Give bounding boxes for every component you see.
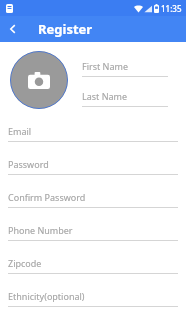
staticText: Zipcode <box>8 257 42 269</box>
staticText: Register <box>38 20 93 38</box>
button[interactable]: Phone Number <box>0 208 186 241</box>
button[interactable]: Confirm Password <box>0 175 186 208</box>
staticText: Last Name <box>82 90 128 102</box>
button[interactable]: Ethnicity(optional) <box>0 274 186 307</box>
button[interactable]: First Name <box>82 60 186 77</box>
button[interactable]: Add profile photo <box>10 51 68 109</box>
button[interactable]: Password <box>0 142 186 175</box>
staticText: Confirm Password <box>8 191 86 203</box>
staticText: Ethnicity(optional) <box>8 290 85 302</box>
staticText: Phone Number <box>8 224 73 236</box>
button[interactable]: Zipcode <box>0 241 186 274</box>
staticText: 11:35 <box>161 3 182 14</box>
button[interactable]: Last Name <box>82 90 186 107</box>
button[interactable]: Back <box>0 16 26 42</box>
staticText: Password <box>8 158 49 170</box>
staticText: Email <box>8 125 32 137</box>
button[interactable]: Email <box>0 109 186 142</box>
staticText: First Name <box>82 60 128 72</box>
